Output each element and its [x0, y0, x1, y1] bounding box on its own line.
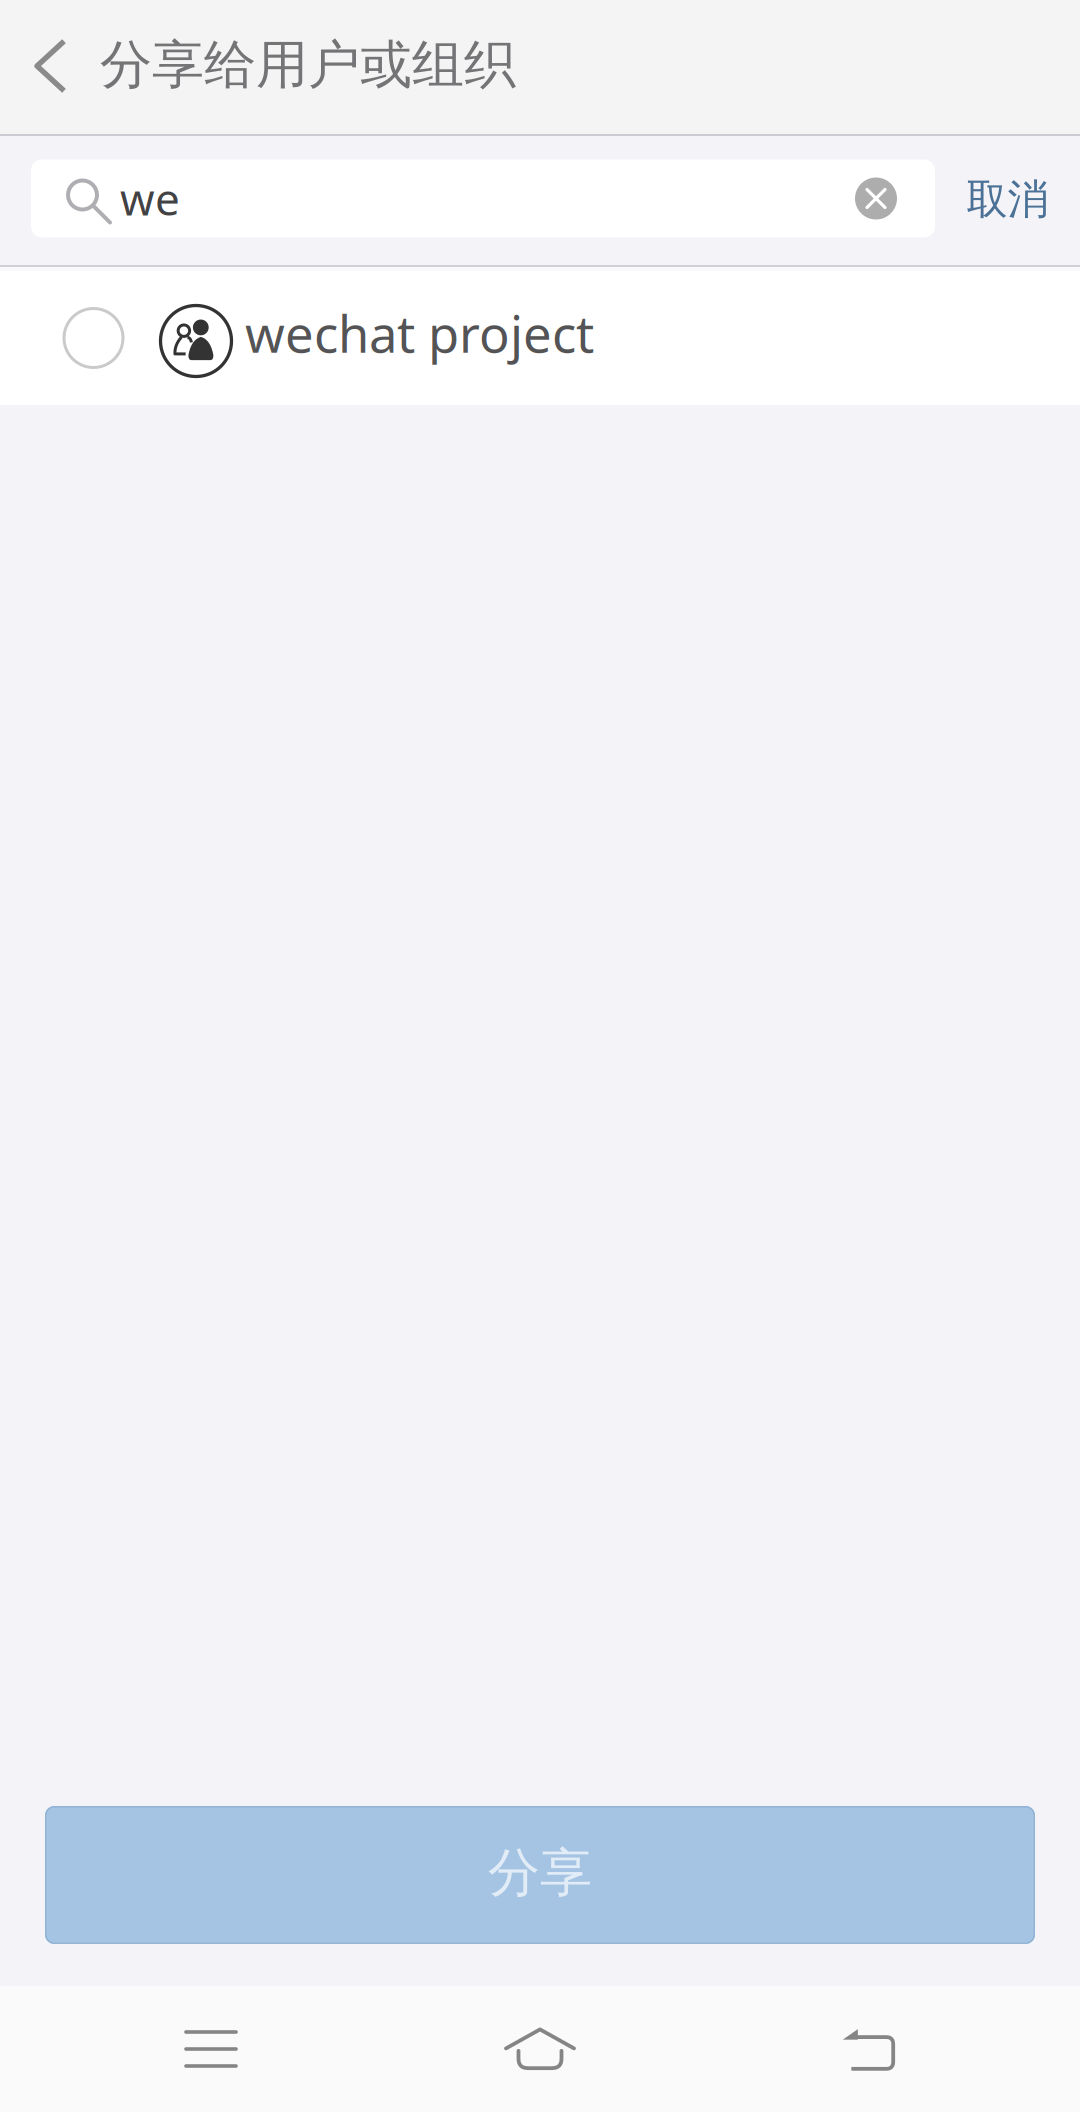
button[interactable]: 分享	[45, 1806, 1035, 1944]
button[interactable]: wechat project	[0, 271, 1080, 405]
staticText: we	[120, 169, 180, 228]
button[interactable]: Back	[0, 0, 100, 136]
staticText: 分享给用户或组织	[100, 33, 516, 97]
button[interactable]: Back	[793, 1986, 943, 2112]
staticText: 取消	[966, 174, 1048, 225]
staticText: 分享	[488, 1841, 592, 1905]
staticText: wechat project	[245, 299, 594, 367]
button[interactable]: Recent apps	[136, 1986, 286, 2112]
button[interactable]: Home	[465, 1986, 615, 2112]
button[interactable]: Clear search text	[837, 159, 915, 237]
button[interactable]: 取消	[935, 143, 1080, 253]
